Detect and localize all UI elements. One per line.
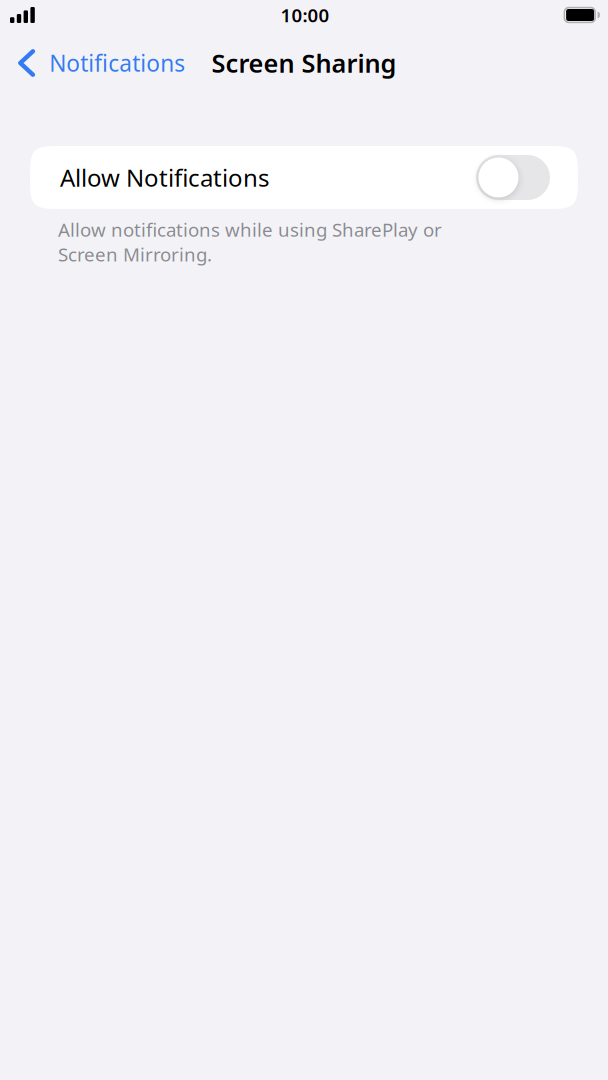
staticText: Screen Sharing (211, 46, 396, 80)
staticText: Allow notifications while using SharePla… (58, 217, 442, 267)
button[interactable]: Back to Notifications (0, 39, 195, 87)
staticText: Allow Notifications (60, 162, 269, 193)
staticText: 10:00 (280, 3, 329, 27)
button[interactable]: Allow Notifications, off (30, 146, 578, 209)
staticText: Notifications (49, 48, 185, 78)
